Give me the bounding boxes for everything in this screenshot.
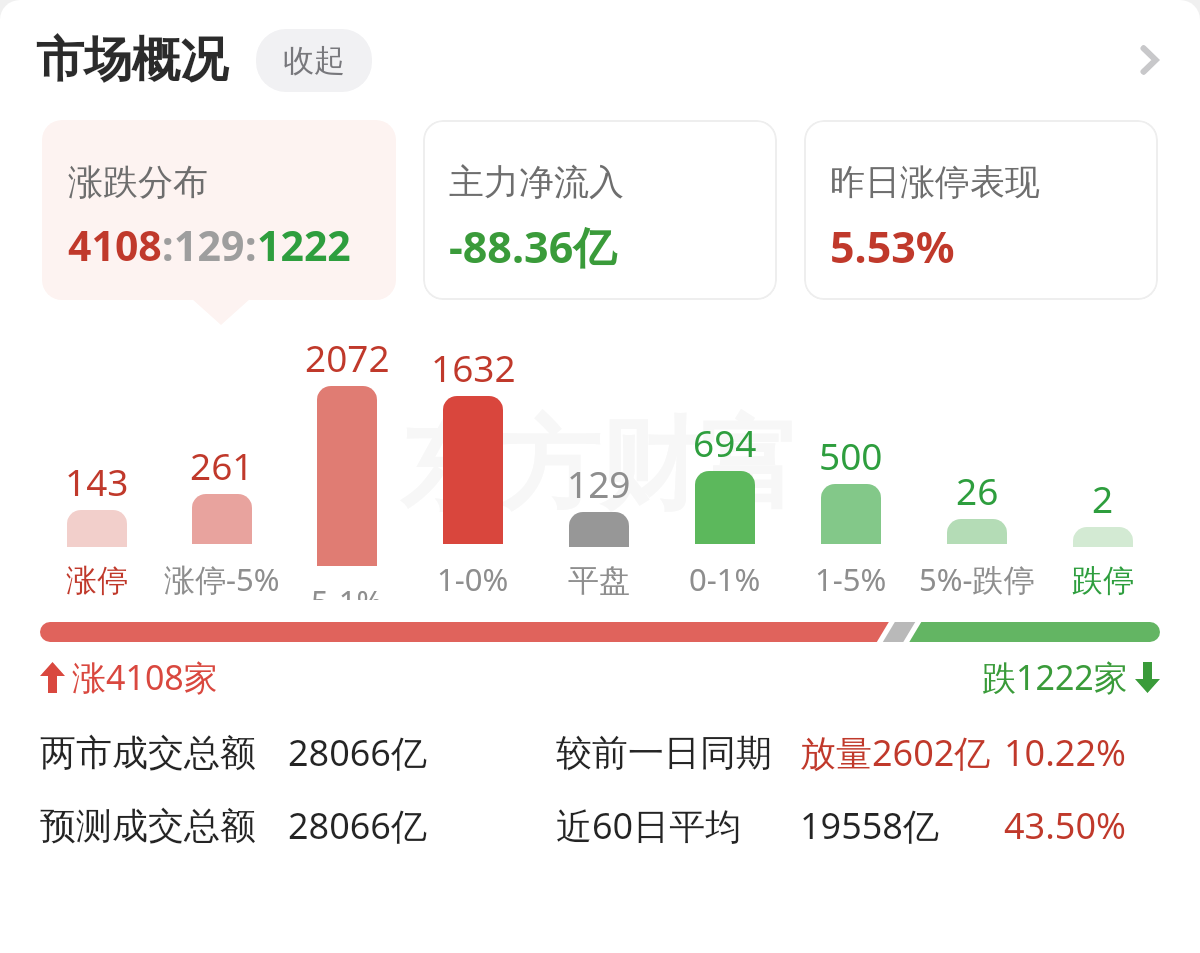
staticText: 5%-跌停 bbox=[919, 558, 1035, 600]
staticText: 涨4108家 bbox=[72, 654, 218, 700]
button[interactable]: 收起 bbox=[256, 29, 372, 92]
staticText: 2 bbox=[1092, 473, 1114, 523]
staticText: 跌停 bbox=[1072, 561, 1134, 600]
staticText: : bbox=[245, 217, 257, 273]
staticText: 43.50% bbox=[1004, 801, 1126, 850]
staticText: 143 bbox=[65, 456, 129, 506]
staticText: 涨跌分布 bbox=[68, 160, 208, 204]
staticText: : bbox=[162, 217, 174, 273]
staticText: 1-5% bbox=[815, 558, 887, 600]
button[interactable]: 主力净流入 bbox=[423, 120, 777, 300]
staticText: 1-0% bbox=[437, 558, 509, 600]
staticText: 129 bbox=[567, 458, 631, 508]
staticText: 收起 bbox=[283, 41, 345, 80]
staticText: 19558亿 bbox=[800, 801, 939, 850]
staticText: 东方财富 bbox=[400, 403, 800, 529]
staticText: 主力净流入 bbox=[449, 160, 624, 204]
staticText: 市场概况 bbox=[36, 30, 228, 90]
staticText: 1222 bbox=[257, 217, 351, 273]
staticText: 平盘 bbox=[568, 561, 630, 600]
staticText: 28066亿 bbox=[288, 728, 427, 777]
staticText: 5.53% bbox=[830, 217, 955, 276]
staticText: 5-1% bbox=[311, 580, 383, 600]
staticText: 昨日涨停表现 bbox=[830, 160, 1040, 204]
staticText: 0-1% bbox=[689, 558, 761, 600]
staticText: 两市成交总额 bbox=[40, 730, 256, 775]
staticText: 28066亿 bbox=[288, 801, 427, 850]
staticText: 500 bbox=[819, 430, 883, 480]
staticText: 跌1222家 bbox=[982, 654, 1128, 700]
staticText: 129 bbox=[174, 217, 245, 273]
staticText: 较前一日同期 bbox=[556, 730, 772, 775]
staticText: 10.22% bbox=[1004, 728, 1126, 777]
staticText: 涨停 bbox=[66, 561, 128, 600]
staticText: 261 bbox=[190, 440, 254, 490]
staticText: 4108 bbox=[68, 217, 162, 273]
button[interactable]: 涨跌分布 bbox=[42, 120, 396, 300]
staticText: 涨停-5% bbox=[164, 558, 280, 600]
button[interactable]: 查看全部 bbox=[1112, 23, 1186, 97]
staticText: 近60日平均 bbox=[556, 801, 742, 850]
staticText: 放量2602亿 bbox=[800, 728, 991, 777]
button[interactable]: 昨日涨停表现 bbox=[804, 120, 1158, 300]
staticText: 26 bbox=[956, 465, 999, 515]
staticText: 694 bbox=[693, 417, 757, 467]
staticText: 2072 bbox=[305, 332, 390, 382]
staticText: 1632 bbox=[431, 342, 516, 392]
staticText: 预测成交总额 bbox=[40, 803, 256, 848]
staticText: -88.36亿 bbox=[449, 217, 617, 276]
